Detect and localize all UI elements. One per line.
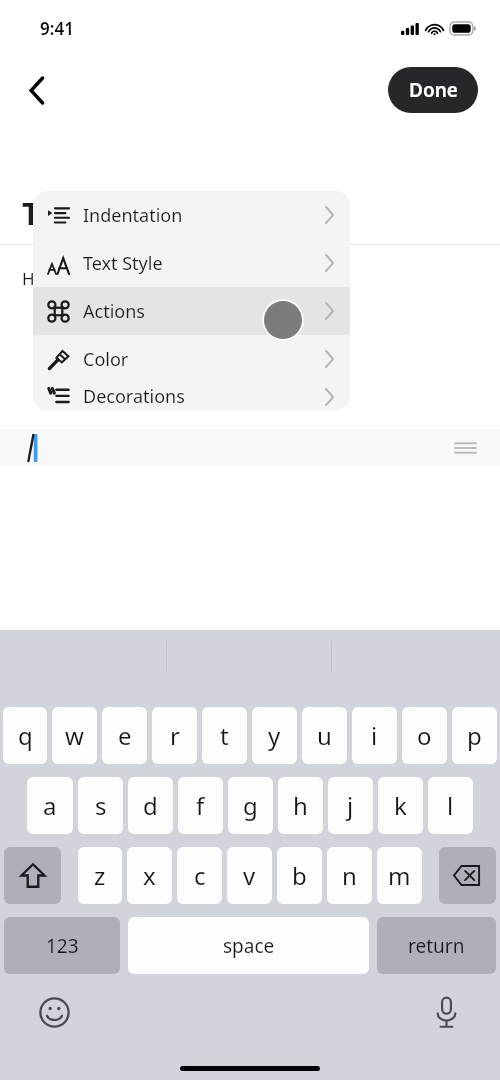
staticText: z (94, 859, 106, 892)
button[interactable]: d (128, 777, 173, 834)
staticText: w (65, 719, 84, 752)
staticText: Text Style (83, 251, 325, 276)
button[interactable]: n (327, 847, 372, 904)
staticText: x (143, 859, 156, 892)
staticText: H (22, 267, 35, 290)
button[interactable]: Formatting options (448, 431, 482, 465)
staticText: n (342, 859, 357, 892)
button[interactable]: f (178, 777, 223, 834)
staticText: i (371, 719, 378, 752)
button[interactable]: Text Style (33, 239, 350, 287)
button[interactable]: Done (388, 67, 478, 113)
button[interactable]: g (228, 777, 273, 834)
staticText: 9:41 (40, 17, 74, 40)
staticText: f (196, 789, 205, 822)
button[interactable]: Decorations (33, 383, 350, 410)
button[interactable]: Emoji (32, 990, 76, 1034)
staticText: c (194, 859, 206, 892)
staticText: u (317, 719, 332, 752)
staticText: a (43, 789, 57, 822)
staticText: h (293, 789, 308, 822)
button[interactable]: w (52, 707, 97, 764)
staticText: Color (83, 347, 325, 372)
button[interactable]: space (128, 917, 369, 974)
button[interactable]: l (428, 777, 473, 834)
button[interactable]: m (377, 847, 422, 904)
button[interactable]: a (27, 777, 73, 834)
button[interactable]: c (177, 847, 222, 904)
staticText: 123 (46, 933, 79, 959)
staticText: space (223, 933, 275, 959)
button[interactable]: p (452, 707, 497, 764)
button[interactable]: Color (33, 335, 350, 383)
button[interactable]: t (202, 707, 247, 764)
staticText: o (417, 719, 432, 752)
staticText: t (220, 719, 229, 752)
button[interactable]: h (278, 777, 323, 834)
staticText: g (243, 789, 258, 822)
staticText: p (467, 719, 482, 752)
staticText: j (347, 789, 354, 822)
staticText: d (143, 789, 158, 822)
button[interactable]: v (227, 847, 272, 904)
button[interactable]: x (127, 847, 172, 904)
button[interactable]: b (277, 847, 322, 904)
button[interactable]: q (3, 707, 47, 764)
button[interactable]: Backspace (439, 847, 496, 904)
button[interactable]: k (378, 777, 423, 834)
button[interactable]: u (302, 707, 347, 764)
button[interactable]: 123 (4, 917, 120, 974)
staticText: T (22, 192, 40, 234)
staticText: m (388, 859, 411, 892)
staticText: Decorations (83, 384, 325, 409)
staticText: return (408, 933, 465, 959)
button[interactable]: i (352, 707, 397, 764)
button[interactable]: Back (12, 65, 62, 115)
staticText: Done (409, 77, 458, 103)
staticText: e (118, 719, 132, 752)
staticText: k (394, 789, 407, 822)
button[interactable]: Shift (4, 847, 61, 904)
button[interactable]: Dictation (424, 990, 468, 1034)
button[interactable]: j (328, 777, 373, 834)
button[interactable]: return (377, 917, 496, 974)
staticText: r (170, 719, 180, 752)
staticText: Indentation (83, 203, 325, 228)
button[interactable]: e (102, 707, 147, 764)
button[interactable]: r (152, 707, 197, 764)
button[interactable]: z (78, 847, 122, 904)
staticText: Actions (83, 299, 325, 324)
staticText: b (292, 859, 307, 892)
button[interactable]: Actions (33, 287, 350, 335)
staticText: s (95, 789, 107, 822)
button[interactable]: o (402, 707, 447, 764)
staticText: q (18, 719, 33, 752)
staticText: y (268, 719, 281, 752)
staticText: v (243, 859, 256, 892)
button[interactable]: y (252, 707, 297, 764)
button[interactable]: Indentation (33, 191, 350, 239)
button[interactable]: s (78, 777, 123, 834)
staticText: l (447, 789, 454, 822)
